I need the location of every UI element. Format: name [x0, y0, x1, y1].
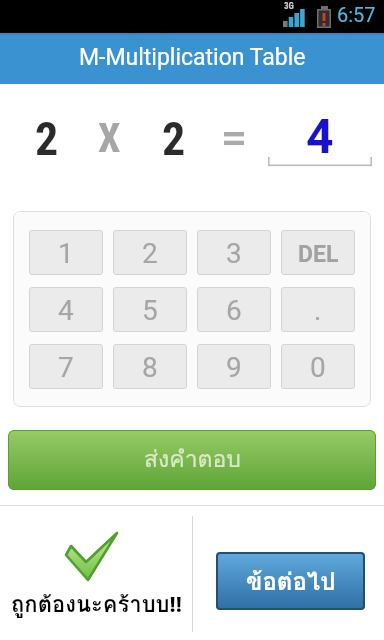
staticText: M-Multiplication Table [79, 44, 306, 71]
staticText: 1 [58, 237, 74, 270]
staticText: ถูกต้องนะคร้าบบ!! [11, 587, 182, 622]
staticText: 8 [142, 351, 158, 384]
button[interactable]: 7 [29, 344, 103, 389]
staticText: 6 [226, 294, 242, 327]
staticText: ข้อต่อไป [246, 562, 336, 600]
button[interactable]: 1 [29, 230, 103, 275]
button[interactable]: 0 [281, 344, 355, 389]
button[interactable]: 5 [113, 287, 187, 332]
staticText: 2 [35, 112, 59, 166]
staticText: 4 [58, 294, 74, 327]
staticText: 9 [226, 351, 242, 384]
button[interactable]: . [281, 287, 355, 332]
staticText: 3 [226, 237, 242, 270]
button[interactable]: 8 [113, 344, 187, 389]
button[interactable]: 9 [197, 344, 271, 389]
button[interactable]: 4 [29, 287, 103, 332]
button[interactable]: ส่งคำตอบ [8, 430, 376, 490]
button[interactable]: ข้อต่อไป [216, 552, 365, 610]
staticText: 4 [306, 108, 334, 164]
staticText: 6:57 [337, 3, 376, 26]
button[interactable]: M-Multiplication Table [0, 33, 384, 84]
button[interactable]: 3 [197, 230, 271, 275]
staticText: . [314, 294, 322, 327]
button[interactable]: DEL [281, 230, 355, 275]
button[interactable]: 2 [113, 230, 187, 275]
staticText: 7 [58, 351, 74, 384]
staticText: 0 [310, 351, 326, 384]
staticText: 3G [284, 1, 294, 12]
staticText: DEL [298, 241, 339, 268]
staticText: 2 [142, 237, 158, 270]
button[interactable]: 6 [197, 287, 271, 332]
staticText: 2 [162, 112, 186, 166]
staticText: ส่งคำตอบ [144, 441, 241, 478]
staticText: 5 [142, 294, 158, 327]
staticText: X [98, 115, 121, 162]
